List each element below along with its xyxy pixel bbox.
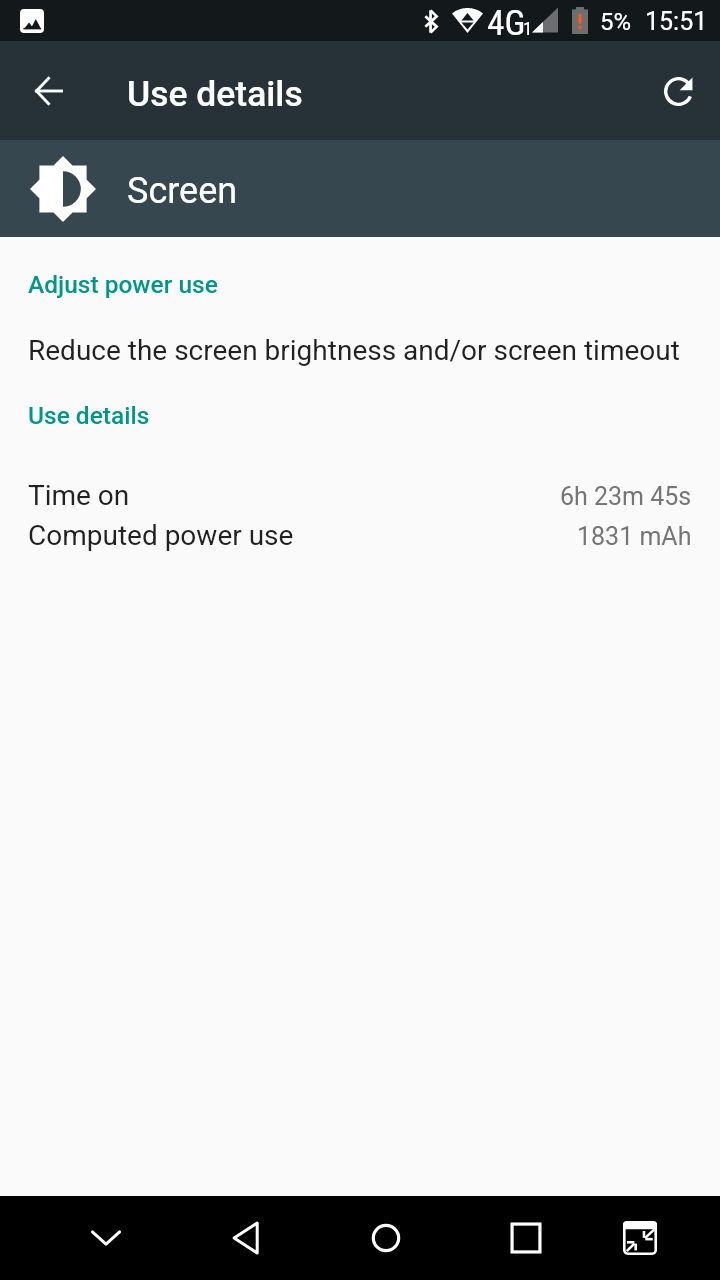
button[interactable]: Time on xyxy=(0,475,720,516)
button[interactable]: Use details xyxy=(0,393,720,438)
staticText: Use details xyxy=(127,73,303,115)
button[interactable]: Back xyxy=(205,1196,289,1280)
staticText: Reduce the screen brightness and/or scre… xyxy=(28,334,680,367)
button[interactable]: Navigate up xyxy=(13,55,85,127)
staticText: 5% xyxy=(600,8,632,36)
staticText: 1831 mAh xyxy=(577,522,692,551)
button[interactable]: Refresh xyxy=(642,55,714,127)
button[interactable]: Home xyxy=(344,1196,428,1280)
button[interactable]: Adjust power use xyxy=(0,252,720,385)
staticText: Use details xyxy=(28,401,150,430)
staticText: Adjust power use xyxy=(28,270,218,299)
staticText: Time on xyxy=(28,479,130,512)
other: Screenshot xyxy=(20,9,44,33)
button[interactable]: Recents xyxy=(484,1196,568,1280)
staticText: 6h 23m 45s xyxy=(560,482,692,511)
staticText: 1 xyxy=(523,17,533,39)
staticText: Screen xyxy=(127,170,238,212)
staticText: 15:51 xyxy=(645,7,708,36)
staticText: 4G xyxy=(487,2,526,43)
staticText: Computed power use xyxy=(28,519,294,552)
button[interactable]: Shrink window xyxy=(598,1196,682,1280)
button[interactable]: Computed power use xyxy=(0,515,720,556)
button[interactable]: Hide keyboard xyxy=(64,1196,148,1280)
